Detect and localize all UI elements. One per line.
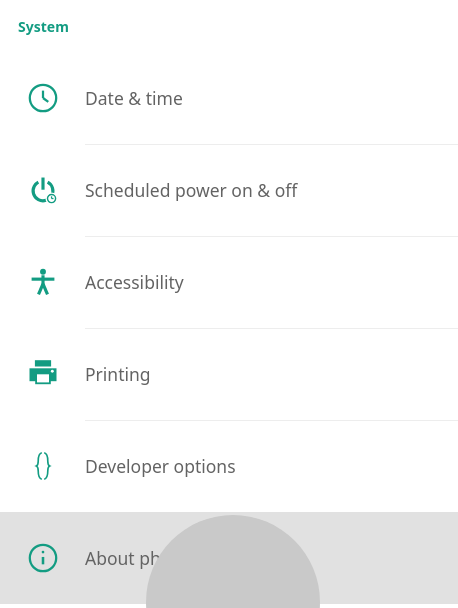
staticText: Scheduled power on & off <box>85 178 298 202</box>
button[interactable]: Printing <box>0 328 458 420</box>
staticText: Printing <box>85 362 151 386</box>
button[interactable]: Accessibility <box>0 236 458 328</box>
button[interactable]: Developer options <box>0 420 458 512</box>
button[interactable]: Date & time <box>0 52 458 144</box>
button[interactable]: About phone <box>0 512 458 604</box>
staticText: About phone <box>85 546 193 570</box>
button[interactable]: Scheduled power on & off <box>0 144 458 236</box>
staticText: System <box>18 17 69 36</box>
staticText: Developer options <box>85 454 236 478</box>
staticText: Date & time <box>85 86 183 110</box>
staticText: Accessibility <box>85 270 184 294</box>
